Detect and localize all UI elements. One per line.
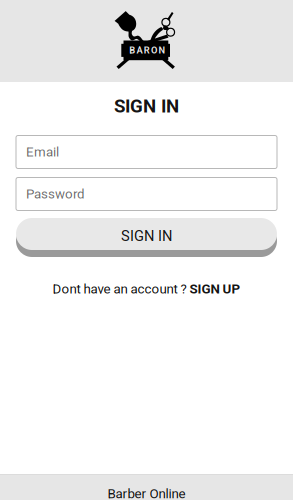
staticText: Dont have an account ? bbox=[52, 281, 186, 297]
staticText: Password bbox=[26, 186, 85, 202]
staticText: SIGN IN bbox=[121, 227, 172, 245]
staticText: Barber Online bbox=[107, 486, 185, 500]
button[interactable]: Password bbox=[16, 177, 277, 210]
button[interactable]: SIGN IN bbox=[16, 214, 277, 254]
staticText: BARON bbox=[129, 45, 165, 56]
staticText: SIGN UP bbox=[189, 281, 240, 297]
button[interactable]: Email bbox=[16, 135, 277, 168]
staticText: Email bbox=[26, 144, 59, 160]
button[interactable]: SIGN UP bbox=[189, 281, 240, 297]
staticText: SIGN IN bbox=[114, 95, 179, 117]
